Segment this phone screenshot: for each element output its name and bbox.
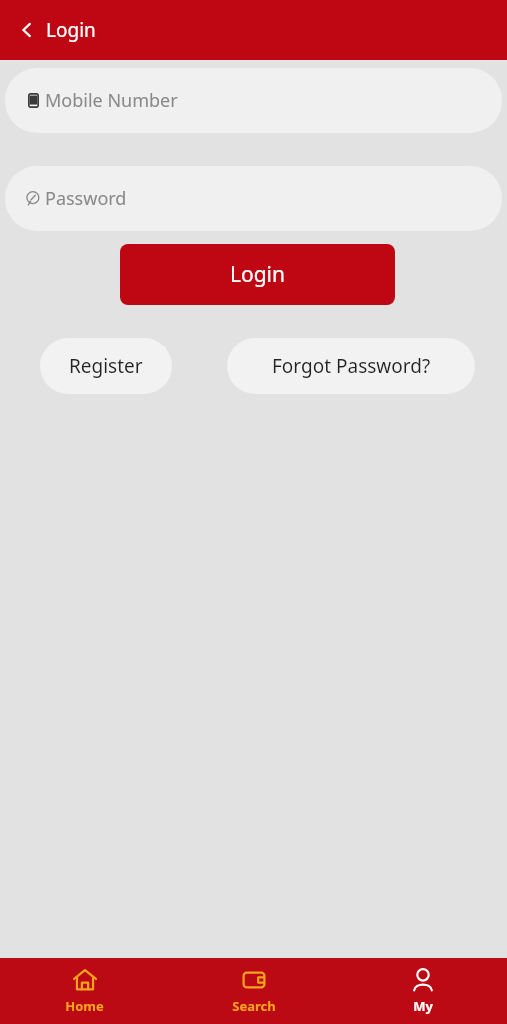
button[interactable]: Login: [120, 244, 395, 305]
staticText: Home: [65, 997, 104, 1015]
staticText: Login: [46, 17, 96, 43]
staticText: Forgot Password?: [272, 353, 431, 379]
staticText: Search: [232, 997, 276, 1015]
staticText: Register: [69, 353, 143, 379]
staticText: My: [413, 997, 433, 1015]
button[interactable]: Mobile Number: [5, 68, 502, 133]
button[interactable]: Home: [0, 961, 169, 1021]
button[interactable]: Password: [5, 166, 502, 231]
staticText: Login: [230, 260, 286, 289]
button[interactable]: Back: [14, 11, 100, 49]
button[interactable]: My: [338, 961, 507, 1021]
staticText: Password: [45, 186, 127, 211]
button[interactable]: Search: [169, 961, 338, 1021]
button[interactable]: Register: [40, 338, 172, 394]
button[interactable]: Forgot Password?: [227, 338, 475, 394]
staticText: Mobile Number: [45, 88, 178, 113]
